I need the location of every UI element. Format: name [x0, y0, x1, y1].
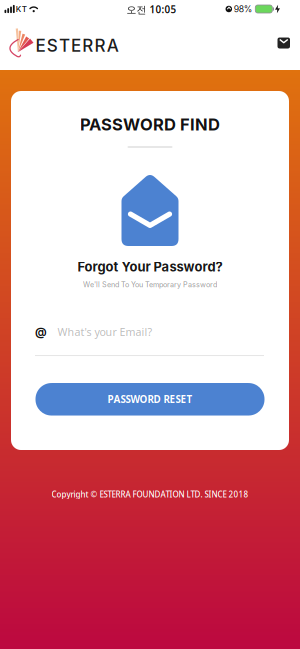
staticText: Copyright © ESTERRA FOUNDATION LTD. SINC…: [51, 489, 248, 500]
staticText: 오전 10:05: [126, 3, 176, 16]
staticText: E: [35, 35, 45, 56]
staticText: KT: [16, 4, 27, 14]
staticText: We'll Send To You Temporary Password: [83, 280, 217, 289]
staticText: S: [47, 35, 58, 56]
staticText: Forgot Your Password?: [77, 259, 222, 275]
staticText: PASSWORD FIND: [80, 114, 220, 134]
staticText: What's your Email?: [57, 325, 152, 339]
staticText: 98%: [234, 4, 253, 14]
button[interactable]: PASSWORD RESET: [35, 383, 264, 415]
staticText: A: [107, 35, 119, 56]
staticText: R: [82, 35, 93, 56]
staticText: PASSWORD RESET: [107, 393, 192, 406]
staticText: E: [71, 35, 81, 56]
staticText: R: [94, 35, 105, 56]
staticText: @: [35, 325, 47, 339]
button[interactable]: Mail: [277, 32, 300, 59]
staticText: T: [59, 35, 70, 56]
button[interactable]: What's your Email?: [11, 325, 289, 356]
